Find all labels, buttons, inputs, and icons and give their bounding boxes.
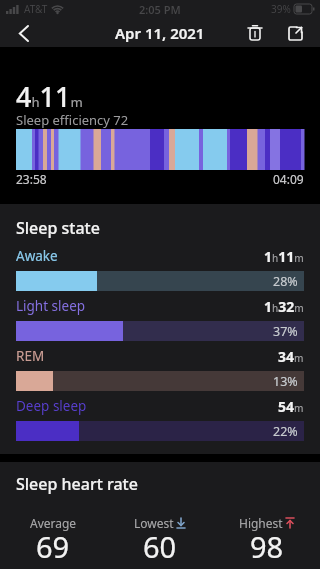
staticText: Sleep efficiency 72 <box>16 111 129 129</box>
staticText: 69 <box>36 527 70 565</box>
staticText: REM <box>16 347 45 365</box>
button[interactable]: Lowest <box>106 515 213 569</box>
staticText: 23:58 <box>16 171 47 187</box>
staticText: 28% <box>273 273 298 290</box>
button[interactable] <box>283 21 307 45</box>
staticText: AT&T <box>24 2 48 16</box>
button[interactable]: Average <box>0 515 106 569</box>
staticText: 2:05 PM <box>139 2 181 17</box>
staticText: 4h11m <box>16 78 83 115</box>
staticText: 54m <box>278 397 304 415</box>
staticText: 34m <box>278 347 304 365</box>
staticText: 22% <box>273 423 298 440</box>
staticText: Lowest <box>134 515 174 531</box>
button[interactable]: Highest <box>213 515 320 569</box>
staticText: Deep sleep <box>16 397 87 415</box>
staticText: Awake <box>16 247 58 265</box>
button[interactable]: 13% <box>16 371 304 391</box>
staticText: 1h11m <box>264 247 304 265</box>
staticText: 60 <box>143 527 177 565</box>
button[interactable]: 28% <box>16 271 304 291</box>
button[interactable] <box>10 20 36 46</box>
staticText: Average <box>30 515 77 531</box>
staticText: 1h32m <box>264 297 304 315</box>
button[interactable] <box>243 21 267 45</box>
button[interactable]: 37% <box>16 321 304 341</box>
staticText: Sleep state <box>16 217 100 239</box>
staticText: 37% <box>273 323 298 340</box>
staticText: Light sleep <box>16 297 86 315</box>
staticText: 04:09 <box>273 171 304 187</box>
staticText: Highest <box>239 515 283 531</box>
staticText: 13% <box>273 373 298 390</box>
staticText: Sleep heart rate <box>16 473 138 495</box>
staticText: Apr 11, 2021 <box>115 23 205 43</box>
staticText: 39% <box>271 2 291 16</box>
staticText: 98 <box>250 527 284 565</box>
button[interactable]: 22% <box>16 421 304 441</box>
